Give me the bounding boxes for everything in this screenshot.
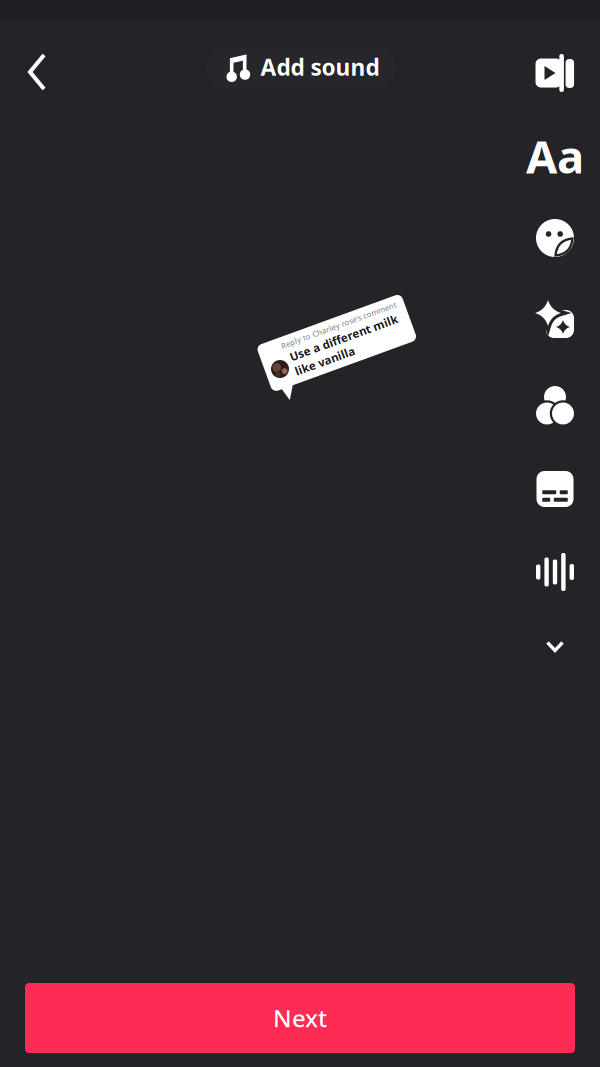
button[interactable]: Stickers bbox=[525, 211, 585, 265]
button[interactable]: Filters bbox=[525, 379, 585, 433]
button[interactable]: Voice effects bbox=[525, 545, 585, 599]
staticText: Aa bbox=[526, 126, 584, 186]
button[interactable]: Edit clips bbox=[525, 45, 585, 101]
button[interactable]: Effects bbox=[525, 292, 585, 346]
button[interactable]: Back bbox=[9, 44, 65, 100]
button[interactable]: Captions bbox=[525, 462, 585, 516]
staticText: Reply to Charley rose's comment bbox=[265, 311, 435, 325]
staticText: Next bbox=[273, 1002, 327, 1034]
button[interactable]: More options bbox=[525, 620, 585, 674]
button[interactable]: Add sound bbox=[207, 46, 395, 88]
staticText: Add sound bbox=[260, 52, 379, 82]
staticText: Use a different milk like vanilla bbox=[271, 326, 430, 368]
button[interactable]: Next bbox=[25, 983, 575, 1053]
button[interactable]: Text bbox=[525, 129, 585, 183]
